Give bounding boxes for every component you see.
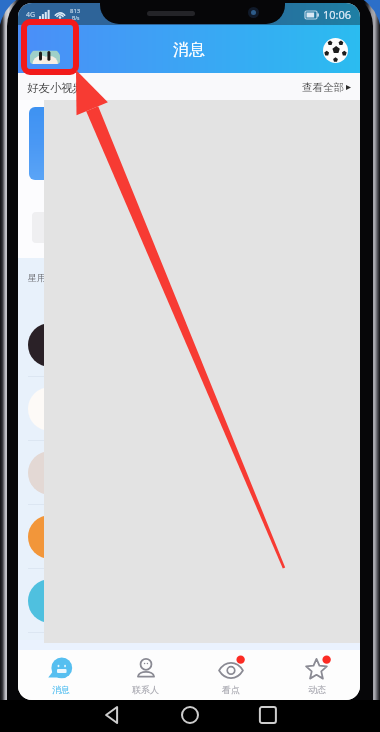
staticText: 看点 [222,684,240,695]
staticText: 消息 [52,684,70,695]
button[interactable]: 看点 [188,650,274,700]
staticText: 动态 [308,684,326,695]
button[interactable] [18,569,360,633]
staticText: 好友小视频 [27,81,85,95]
button[interactable] [29,107,83,180]
button[interactable] [18,505,360,569]
button[interactable]: 联系人 [103,650,188,700]
button[interactable]: 动态 [274,650,360,700]
staticText: 消息 [173,40,205,60]
staticText: 星用户 [28,272,55,283]
staticText: 813 [70,7,81,15]
button[interactable]: 查看全部 [302,81,352,94]
button[interactable] [89,107,143,180]
staticText: B/s [72,15,80,22]
button[interactable]: 消息 [18,650,103,700]
button[interactable] [32,212,342,243]
staticText: 10:06 [323,7,352,22]
staticText: 联系人 [132,684,159,695]
button[interactable]: Profile avatar [30,34,60,64]
staticText: 查看全部 [302,81,344,94]
button[interactable] [18,441,360,505]
button[interactable] [18,377,360,441]
button[interactable]: Football game [323,38,348,63]
button[interactable] [18,313,360,377]
staticText: 4G [26,10,36,20]
